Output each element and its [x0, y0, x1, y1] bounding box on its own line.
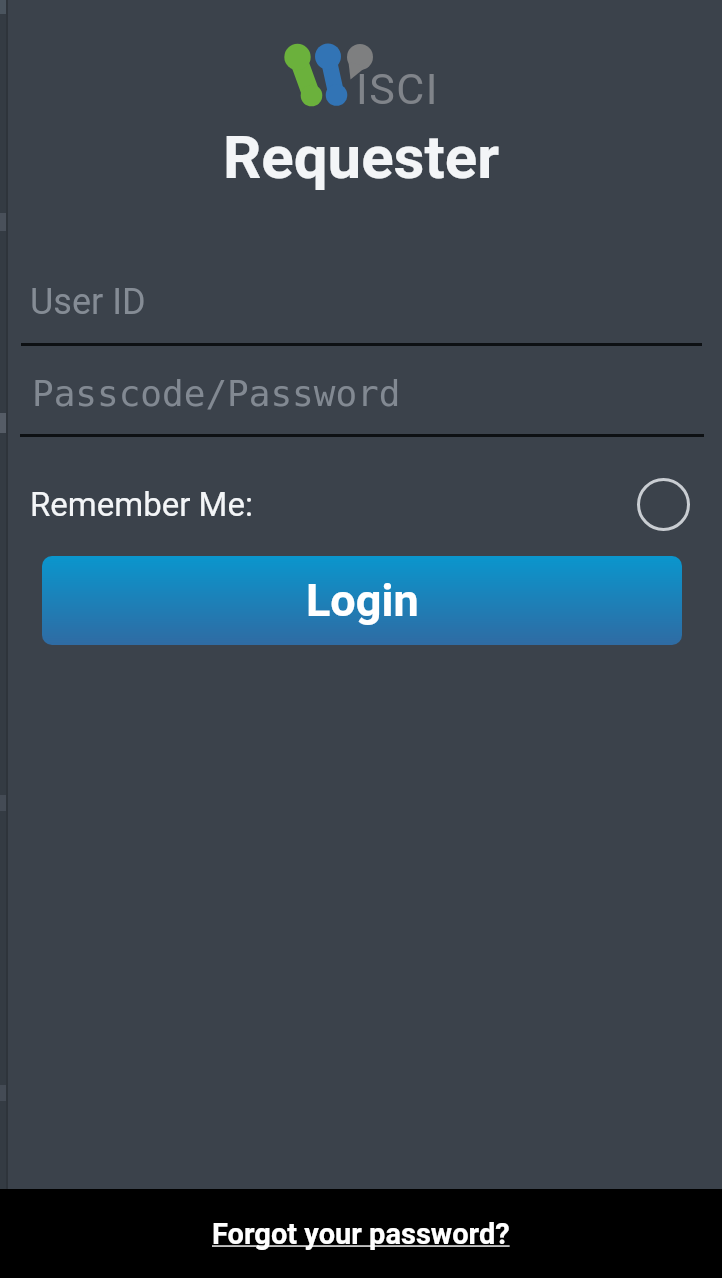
button[interactable]: Passcode/Password	[20, 354, 704, 437]
button[interactable]: Remember Me:	[21, 470, 701, 540]
staticText: Login	[306, 574, 419, 627]
staticText: Passcode/Password	[32, 373, 401, 415]
staticText: ISCI	[356, 64, 439, 114]
staticText: Remember Me:	[30, 485, 253, 524]
staticText: Requester	[0, 122, 722, 192]
staticText: Forgot your password?	[212, 1217, 510, 1251]
button[interactable]: User ID	[21, 262, 702, 346]
staticText: User ID	[30, 281, 146, 323]
button[interactable]: Forgot your password?	[200, 1211, 522, 1257]
button[interactable]: Login	[42, 556, 682, 645]
